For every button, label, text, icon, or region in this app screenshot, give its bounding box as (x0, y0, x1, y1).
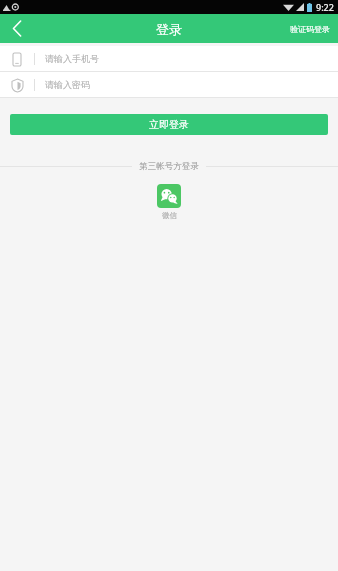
button[interactable]: 请输入密码 (0, 72, 338, 97)
staticText: 请输入手机号 (45, 53, 99, 64)
staticText: 验证码登录 (290, 24, 330, 34)
staticText: 立即登录 (149, 118, 189, 131)
button[interactable]: 验证码登录 (282, 18, 338, 40)
staticText: 微信 (162, 211, 177, 220)
button[interactable]: 请输入手机号 (0, 46, 338, 71)
button[interactable]: WeChat login (155, 182, 183, 222)
staticText: 第三帐号方登录 (139, 161, 199, 172)
staticText: 登录 (156, 21, 182, 37)
staticText: 9:22 (316, 1, 334, 13)
staticText: 请输入密码 (45, 79, 90, 90)
button[interactable]: 立即登录 (10, 114, 328, 135)
button[interactable]: Back (0, 14, 34, 43)
